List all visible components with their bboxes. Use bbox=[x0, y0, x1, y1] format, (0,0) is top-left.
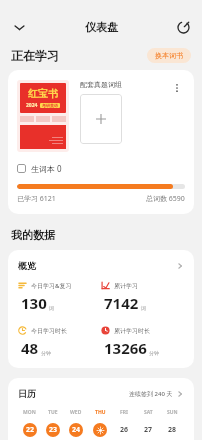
button[interactable]: Today bbox=[93, 423, 107, 437]
staticText: 27 bbox=[144, 425, 153, 435]
staticText: 我的数据 bbox=[11, 228, 55, 242]
button[interactable]: 红宝书 bbox=[17, 80, 69, 152]
staticText: 词 bbox=[141, 305, 146, 311]
button[interactable]: Refresh bbox=[170, 14, 196, 40]
staticText: 生词本 0 bbox=[31, 163, 62, 174]
button[interactable]: Collapse bbox=[6, 14, 32, 40]
button[interactable]: 红宝书 bbox=[8, 70, 194, 214]
staticText: WED bbox=[70, 409, 82, 416]
staticText: 今日学习&复习 bbox=[31, 282, 72, 290]
staticText: 总词数 6590 bbox=[146, 194, 185, 204]
staticText: 考研英语 bbox=[42, 103, 58, 108]
staticText: 累计学习 bbox=[114, 282, 138, 290]
button[interactable]: 28 bbox=[165, 423, 179, 437]
staticText: 分钟 bbox=[41, 350, 51, 356]
staticText: 2024 bbox=[26, 102, 38, 109]
staticText: 23 bbox=[49, 425, 58, 435]
staticText: 正在学习 bbox=[11, 48, 59, 63]
staticText: SUN bbox=[167, 409, 178, 416]
staticText: 概览 bbox=[18, 260, 36, 271]
button[interactable]: 27 bbox=[141, 423, 155, 437]
staticText: 仪表盘 bbox=[85, 20, 118, 34]
button[interactable]: 概览 bbox=[8, 250, 194, 368]
staticText: SAT bbox=[144, 409, 153, 416]
staticText: 配套真题词组 bbox=[80, 80, 122, 89]
button[interactable]: Add word book bbox=[80, 94, 122, 144]
staticText: MON bbox=[23, 409, 36, 416]
button[interactable]: 日历 bbox=[8, 378, 194, 440]
staticText: 48 bbox=[21, 338, 39, 358]
button[interactable]: 24 bbox=[69, 423, 83, 437]
staticText: 7142 bbox=[104, 293, 139, 313]
staticText: 累计学习时长 bbox=[114, 327, 150, 335]
staticText: 词 bbox=[49, 305, 54, 311]
staticText: THU bbox=[95, 409, 106, 416]
staticText: 日历 bbox=[18, 388, 36, 399]
staticText: 28 bbox=[168, 425, 177, 435]
button[interactable]: 22 bbox=[23, 423, 37, 437]
staticText: 22 bbox=[26, 425, 35, 435]
staticText: 换本词书 bbox=[155, 51, 183, 60]
button[interactable]: 26 bbox=[117, 423, 131, 437]
staticText: 连续签到 240 天 bbox=[129, 390, 173, 398]
button[interactable]: 换本词书 bbox=[147, 48, 191, 63]
staticText: 130 bbox=[21, 293, 47, 313]
staticText: 已学习 6121 bbox=[17, 194, 56, 204]
staticText: 今日学习时长 bbox=[31, 327, 67, 335]
button[interactable]: New words notebook bbox=[17, 164, 26, 173]
staticText: FRI bbox=[120, 409, 128, 416]
button[interactable]: 23 bbox=[46, 423, 60, 437]
staticText: 红宝书 bbox=[28, 87, 58, 100]
staticText: 分钟 bbox=[149, 350, 159, 356]
staticText: TUE bbox=[48, 409, 58, 416]
staticText: 24 bbox=[72, 425, 81, 435]
staticText: 26 bbox=[120, 425, 129, 435]
button[interactable]: More options bbox=[169, 80, 185, 96]
staticText: 13266 bbox=[104, 338, 147, 358]
